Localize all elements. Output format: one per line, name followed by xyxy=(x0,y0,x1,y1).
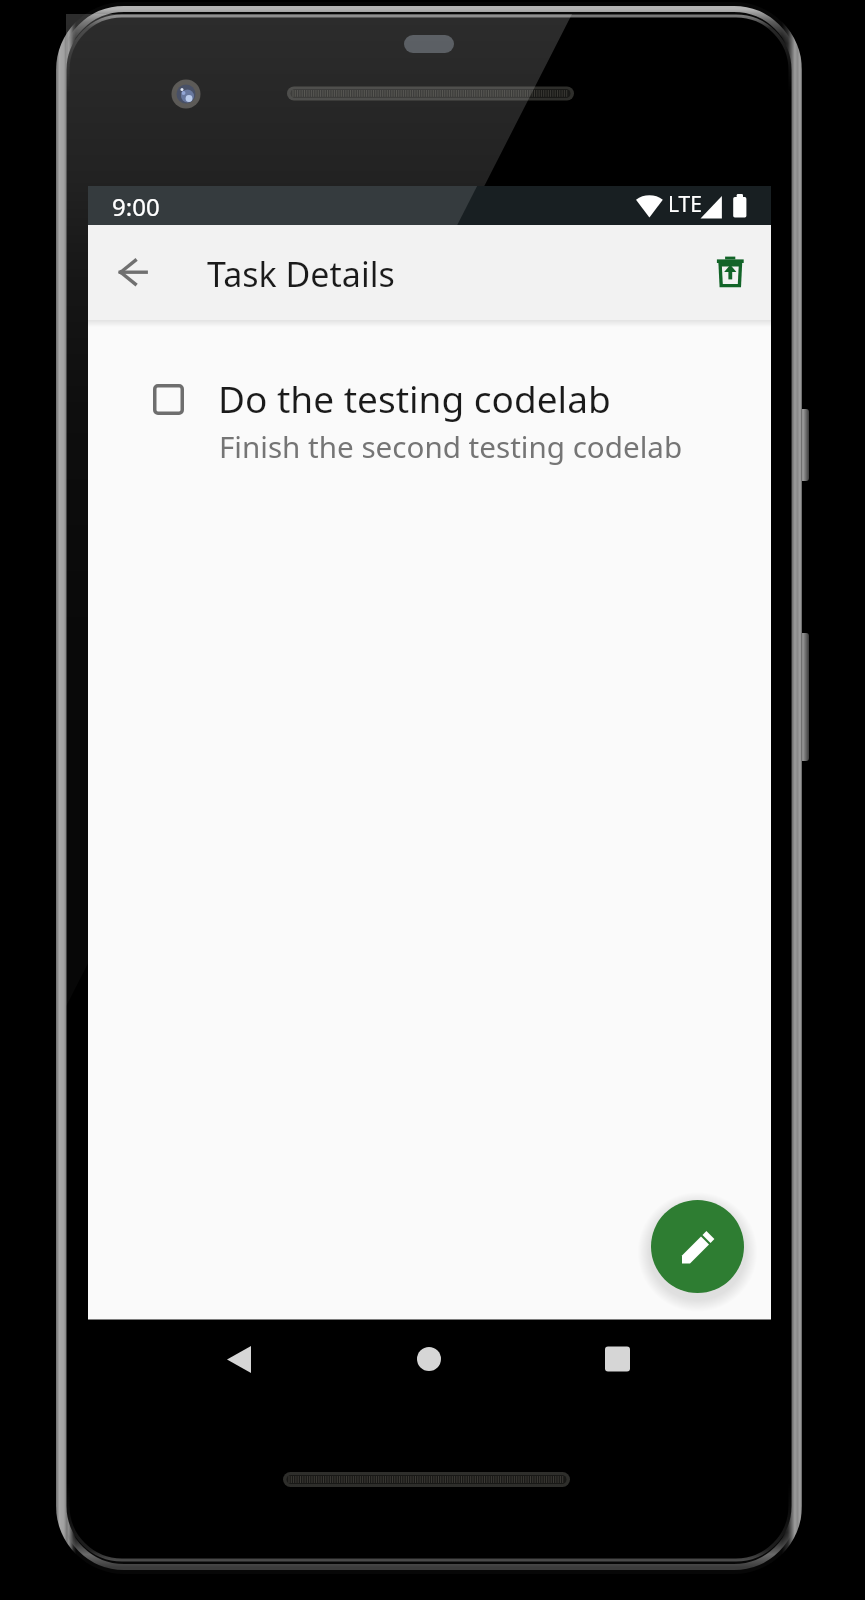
button[interactable]: Recent apps xyxy=(573,1320,661,1408)
staticText: Do the testing codelab xyxy=(218,373,611,423)
staticText: Finish the second testing codelab xyxy=(219,426,683,466)
staticText: LTE xyxy=(668,190,702,219)
staticText: 9:00 xyxy=(112,190,160,223)
button[interactable]: Edit task xyxy=(651,1200,744,1293)
button[interactable]: Home xyxy=(385,1320,473,1408)
button[interactable]: Do the testing codelab xyxy=(88,360,771,475)
button[interactable]: Delete task xyxy=(707,248,755,296)
staticText: Task Details xyxy=(207,251,395,297)
button[interactable]: Back xyxy=(109,248,157,296)
button[interactable]: Back xyxy=(195,1320,283,1408)
